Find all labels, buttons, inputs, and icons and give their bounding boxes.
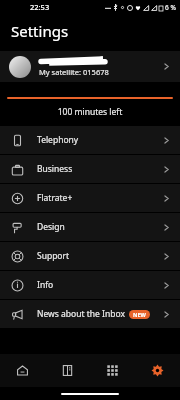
button[interactable]: Apps [90,354,135,387]
button[interactable]: Business [0,155,180,183]
staticText: Design [37,221,65,233]
staticText: NEW [133,311,146,318]
staticText: 100 minutes left [0,106,180,118]
staticText: 22:53 [30,2,50,12]
button[interactable]: Contacts [45,354,90,387]
button[interactable]: Support [0,242,180,270]
staticText: 6 % [165,3,176,12]
staticText: Flatrate+ [37,192,73,204]
button[interactable]: Info [0,271,180,299]
button[interactable]: Home [0,354,45,387]
button[interactable]: My satellite: 015678 [0,51,180,82]
staticText: Info [37,279,54,291]
staticText: Business [37,163,73,175]
button[interactable]: Telephony [0,126,180,154]
button[interactable]: Settings [135,354,180,387]
staticText: Support [37,250,70,262]
button[interactable]: News about the Inbox [0,300,180,328]
staticText: News about the Inbox [37,308,125,320]
staticText: Settings [11,21,69,41]
staticText: Telephony [37,134,79,146]
button[interactable]: Design [0,213,180,241]
staticText: My satellite: 015678 [39,67,109,77]
button[interactable]: Flatrate+ [0,184,180,212]
